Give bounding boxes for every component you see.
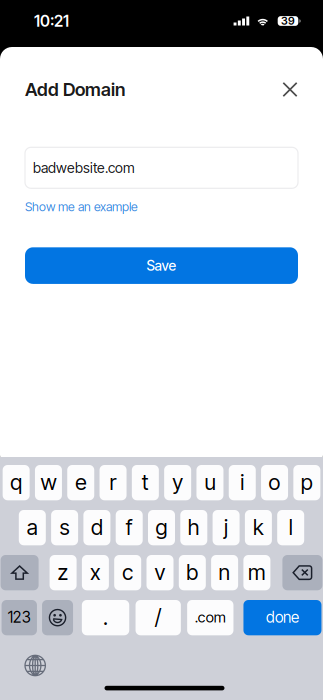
staticText: Add Domain [25, 78, 125, 100]
button[interactable]: Shift [1, 555, 39, 590]
staticText: done [266, 608, 299, 626]
button[interactable]: k [245, 510, 272, 545]
button[interactable]: e [67, 465, 94, 500]
button[interactable]: q [3, 465, 30, 500]
button[interactable]: Emoji [42, 600, 73, 635]
staticText: s [60, 514, 70, 540]
staticText: Save [146, 257, 176, 274]
button[interactable]: l [277, 510, 304, 545]
staticText: 39 [281, 14, 295, 27]
button[interactable]: u [196, 465, 223, 500]
button[interactable]: 123 [1, 600, 37, 635]
staticText: t [142, 469, 149, 495]
button[interactable]: w [35, 465, 62, 500]
button[interactable]: c [114, 555, 141, 590]
staticText: r [109, 469, 116, 495]
staticText: g [155, 514, 167, 540]
staticText: m [248, 559, 266, 585]
staticText: . [103, 604, 108, 630]
staticText: .com [195, 608, 226, 626]
button[interactable]: v [146, 555, 173, 590]
staticText: n [219, 559, 231, 585]
staticText: badwebsite.com [33, 159, 135, 176]
staticText: e [75, 469, 86, 495]
staticText: q [10, 469, 22, 495]
button[interactable]: n [211, 555, 238, 590]
button[interactable]: x [82, 555, 109, 590]
button[interactable]: Close [282, 76, 298, 102]
button[interactable]: m [243, 555, 270, 590]
button[interactable]: Next keyboard [24, 655, 46, 676]
staticText: l [289, 514, 293, 540]
button[interactable]: d [83, 510, 110, 545]
staticText: j [224, 514, 228, 540]
button[interactable]: h [180, 510, 207, 545]
staticText: i [240, 469, 244, 495]
staticText: a [27, 514, 38, 540]
staticText: z [58, 559, 69, 585]
staticText: u [204, 469, 215, 495]
button[interactable]: .com [187, 600, 233, 635]
staticText: 123 [8, 608, 31, 626]
button[interactable]: done [243, 600, 321, 635]
staticText: b [186, 559, 198, 585]
button[interactable]: b [179, 555, 206, 590]
button[interactable]: j [213, 510, 240, 545]
staticText: Show me an example [25, 199, 138, 214]
staticText: p [301, 469, 313, 495]
staticText: 10:21 [34, 11, 69, 30]
button[interactable]: f [116, 510, 143, 545]
staticText: f [126, 514, 133, 540]
staticText: k [253, 514, 264, 540]
button[interactable]: z [50, 555, 77, 590]
button[interactable]: Save [0, 247, 323, 284]
button[interactable]: a [19, 510, 46, 545]
staticText: y [172, 469, 183, 495]
staticText: h [188, 514, 200, 540]
staticText: v [154, 559, 165, 585]
button[interactable]: Show me an example [25, 196, 138, 217]
staticText: x [90, 559, 101, 585]
button[interactable]: r [99, 465, 126, 500]
button[interactable]: s [51, 510, 78, 545]
button[interactable]: i [229, 465, 256, 500]
button[interactable]: o [261, 465, 288, 500]
staticText: o [269, 469, 281, 495]
staticText: d [91, 514, 103, 540]
button[interactable]: Delete [282, 555, 322, 590]
staticText: c [122, 559, 133, 585]
button[interactable]: . [82, 600, 129, 635]
button[interactable]: / [135, 600, 181, 635]
button[interactable]: p [293, 465, 320, 500]
staticText: / [155, 604, 162, 630]
button[interactable]: y [164, 465, 191, 500]
staticText: w [40, 469, 56, 495]
button[interactable]: g [148, 510, 175, 545]
button[interactable]: t [132, 465, 159, 500]
